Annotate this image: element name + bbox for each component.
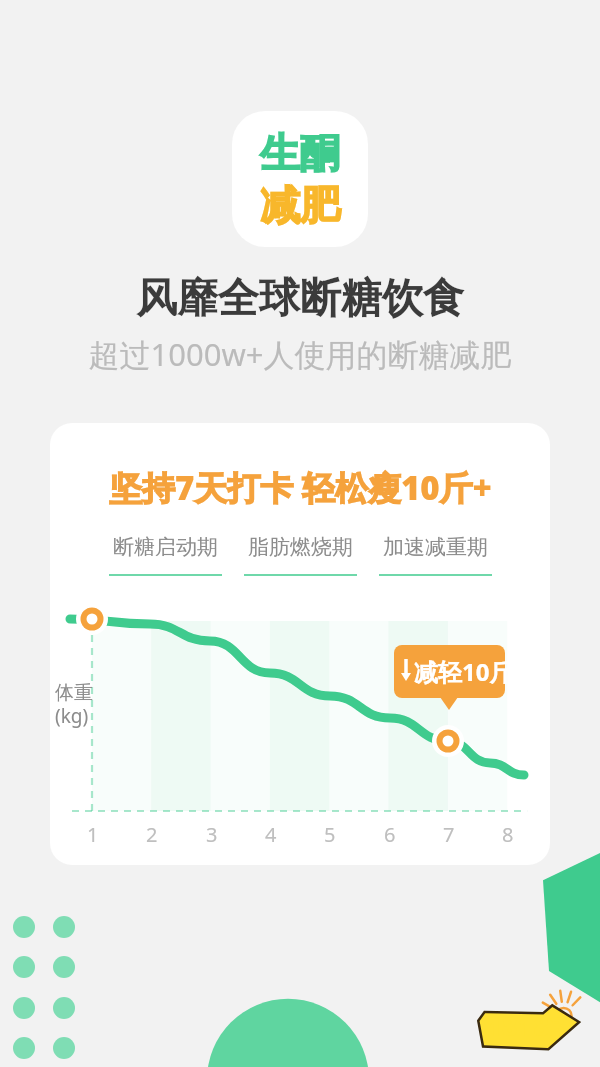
staticText: 7	[443, 821, 455, 848]
staticText: 超过1000w+人使用的断糖减肥	[88, 333, 512, 375]
staticText: 坚持7天打卡 轻松瘦10斤+	[109, 465, 492, 510]
staticText: 18183	[486, 1007, 566, 1044]
staticText: 2	[146, 821, 158, 848]
staticText: 风靡全球断糖饮食	[136, 273, 464, 325]
staticText: 5	[324, 821, 336, 848]
staticText: 3	[206, 821, 218, 848]
button[interactable]: 生酮减肥应用图标	[232, 111, 368, 247]
staticText: 6	[384, 821, 396, 848]
staticText: 减肥	[260, 180, 340, 230]
staticText: 体重	[55, 681, 93, 705]
staticText: 4	[265, 821, 277, 848]
staticText: 断糖启动期	[113, 534, 218, 560]
staticText: (kg)	[55, 703, 89, 729]
staticText: 1	[87, 821, 99, 848]
staticText: 8	[502, 821, 514, 848]
staticText: 脂肪燃烧期	[248, 534, 353, 560]
staticText: 减轻10斤	[414, 655, 514, 688]
button[interactable]: 坚持7天打卡 轻松瘦10斤+	[50, 423, 550, 865]
staticText: 加速减重期	[383, 534, 488, 560]
staticText: 生酮	[260, 128, 340, 178]
